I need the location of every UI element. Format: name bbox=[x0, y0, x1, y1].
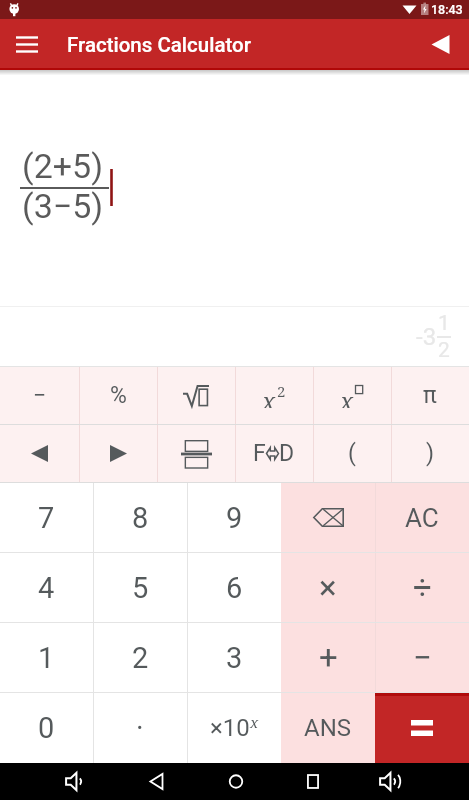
staticText: + bbox=[319, 638, 338, 677]
staticText: 8 bbox=[132, 501, 149, 535]
staticText: 4 bbox=[38, 571, 55, 605]
staticText: AC bbox=[405, 503, 439, 533]
button[interactable] bbox=[375, 693, 469, 763]
button[interactable]: 3 bbox=[187, 623, 281, 692]
staticText: 18:43 bbox=[431, 2, 463, 17]
button[interactable]: 5 bbox=[93, 553, 187, 622]
staticText: π bbox=[423, 382, 437, 409]
button[interactable]: 9 bbox=[187, 483, 281, 552]
staticText: (2+5) bbox=[22, 146, 103, 186]
staticText: 0 bbox=[38, 711, 55, 745]
staticText: · bbox=[136, 711, 144, 745]
staticText: x bbox=[262, 384, 276, 408]
button[interactable]: Home bbox=[209, 763, 263, 800]
button[interactable]: Backspace bbox=[281, 483, 375, 552]
button[interactable]: Move cursor right bbox=[79, 425, 157, 482]
staticText: 2 bbox=[132, 641, 149, 675]
staticText: − bbox=[413, 638, 432, 677]
button[interactable]: Square bbox=[235, 367, 313, 424]
staticText: 2 bbox=[438, 338, 450, 363]
button[interactable]: 0 bbox=[0, 693, 93, 763]
staticText: − bbox=[33, 382, 47, 409]
staticText: x bbox=[250, 712, 259, 732]
button[interactable]: Move cursor left bbox=[0, 425, 79, 482]
button[interactable]: + bbox=[281, 623, 375, 692]
staticText: Fractions Calculator bbox=[67, 33, 251, 57]
staticText: F bbox=[253, 440, 266, 467]
staticText: x bbox=[340, 384, 354, 408]
button[interactable]: Volume down bbox=[49, 763, 103, 800]
button[interactable]: 1 bbox=[0, 623, 93, 692]
button[interactable]: ANS bbox=[281, 693, 375, 763]
staticText: ÷ bbox=[413, 568, 432, 607]
staticText: (3−5) bbox=[22, 186, 104, 226]
button[interactable]: ( bbox=[313, 425, 391, 482]
button[interactable]: 7 bbox=[0, 483, 93, 552]
button[interactable]: × bbox=[281, 553, 375, 622]
button[interactable]: Fraction bbox=[157, 425, 235, 482]
button[interactable]: ×10 bbox=[187, 693, 281, 763]
button[interactable]: Open navigation menu bbox=[0, 19, 54, 70]
button[interactable]: Back bbox=[413, 19, 469, 70]
button[interactable]: − bbox=[375, 623, 469, 692]
button[interactable]: % bbox=[79, 367, 157, 424]
staticText: ×10 bbox=[210, 714, 250, 742]
button[interactable]: 4 bbox=[0, 553, 93, 622]
staticText: ) bbox=[426, 440, 435, 467]
button[interactable]: 8 bbox=[93, 483, 187, 552]
staticText: 7 bbox=[38, 501, 55, 535]
button[interactable]: Back bbox=[130, 763, 184, 800]
staticText: 5 bbox=[132, 571, 149, 605]
button[interactable]: Power bbox=[313, 367, 391, 424]
button[interactable]: Fraction to decimal bbox=[235, 425, 313, 482]
button[interactable]: · bbox=[93, 693, 187, 763]
button[interactable]: Recent apps bbox=[286, 763, 340, 800]
staticText: D bbox=[279, 440, 295, 467]
staticText: 2 bbox=[277, 381, 286, 401]
staticText: -3 bbox=[416, 323, 437, 351]
staticText: 3 bbox=[226, 641, 243, 675]
button[interactable]: − bbox=[0, 367, 79, 424]
button[interactable]: Square root bbox=[157, 367, 235, 424]
staticText: × bbox=[319, 568, 337, 607]
staticText: 1 bbox=[38, 641, 55, 675]
button[interactable]: 2 bbox=[93, 623, 187, 692]
staticText: ( bbox=[348, 440, 356, 467]
button[interactable]: AC bbox=[375, 483, 469, 552]
staticText: 1 bbox=[438, 311, 450, 336]
button[interactable]: Volume up bbox=[363, 763, 417, 800]
staticText: 9 bbox=[226, 501, 243, 535]
button[interactable]: ) bbox=[391, 425, 469, 482]
staticText: % bbox=[110, 382, 127, 409]
staticText: ANS bbox=[304, 714, 352, 742]
button[interactable]: 6 bbox=[187, 553, 281, 622]
button[interactable]: ÷ bbox=[375, 553, 469, 622]
staticText: 6 bbox=[226, 571, 243, 605]
button[interactable]: π bbox=[391, 367, 469, 424]
